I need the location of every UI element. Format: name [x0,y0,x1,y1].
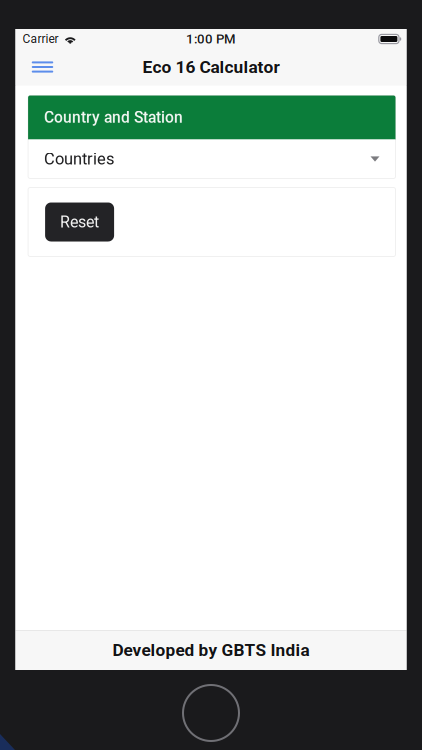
staticText: Reset [60,213,99,231]
staticText: Carrier [22,32,58,46]
staticText: Eco 16 Calculator [142,57,279,77]
staticText: Countries [44,149,114,169]
button[interactable]: Countries [28,139,395,178]
button[interactable]: Reset [45,202,114,241]
staticText: Country and Station [44,108,183,127]
staticText: 1:00 PM [186,31,236,47]
staticText: Developed by GBTS India [112,640,309,660]
button[interactable]: Menu [23,49,61,85]
